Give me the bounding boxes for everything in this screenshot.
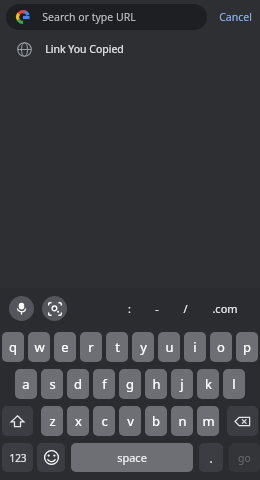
staticText: c [101, 412, 108, 430]
button[interactable]: y [132, 332, 154, 362]
staticText: d [74, 375, 82, 393]
staticText: r [88, 338, 94, 356]
staticText: Cancel [219, 10, 252, 24]
staticText: / [183, 301, 188, 316]
button[interactable]: Emoji [37, 443, 65, 472]
staticText: u [165, 338, 174, 356]
staticText: Search or type URL [42, 10, 136, 24]
staticText: o [217, 338, 225, 356]
button[interactable]: f [93, 369, 115, 399]
staticText: .com [212, 301, 238, 316]
button[interactable]: t [106, 332, 128, 362]
staticText: b [152, 412, 160, 430]
staticText: j [180, 375, 184, 393]
button[interactable]: b [145, 406, 167, 436]
button[interactable]: Shift [2, 406, 33, 436]
button[interactable]: r [80, 332, 102, 362]
button[interactable]: space [71, 443, 193, 472]
staticText: Link You Copied [45, 42, 124, 56]
button[interactable]: o [210, 332, 232, 362]
button[interactable]: a [15, 369, 37, 399]
staticText: e [61, 338, 69, 356]
button[interactable]: : [122, 295, 137, 322]
button[interactable]: Cancel [211, 4, 260, 30]
staticText: n [178, 412, 187, 430]
button[interactable]: h [145, 369, 167, 399]
staticText: y [140, 338, 147, 356]
staticText: x [75, 412, 82, 430]
button[interactable]: u [158, 332, 180, 362]
staticText: l [232, 375, 236, 393]
button[interactable]: c [93, 406, 115, 436]
button[interactable]: d [67, 369, 89, 399]
button[interactable]: 123 [2, 443, 33, 472]
staticText: space [117, 450, 147, 465]
staticText: go [238, 451, 251, 465]
button[interactable]: z [41, 406, 63, 436]
button[interactable]: g [119, 369, 141, 399]
button[interactable]: v [119, 406, 141, 436]
button[interactable]: / [177, 295, 194, 322]
staticText: - [155, 301, 159, 316]
staticText: s [49, 375, 56, 393]
staticText: p [243, 338, 251, 356]
staticText: q [9, 338, 17, 356]
staticText: k [205, 375, 212, 393]
button[interactable]: l [223, 369, 245, 399]
button[interactable]: n [171, 406, 193, 436]
button[interactable]: i [184, 332, 206, 362]
staticText: w [34, 338, 45, 356]
button[interactable]: go [229, 443, 260, 472]
staticText: i [193, 338, 197, 356]
button[interactable]: s [41, 369, 63, 399]
staticText: a [22, 375, 30, 393]
staticText: t [115, 338, 120, 356]
staticText: z [49, 412, 56, 430]
button[interactable]: .com [206, 295, 244, 322]
button[interactable]: k [197, 369, 219, 399]
button[interactable]: e [54, 332, 76, 362]
button[interactable]: Google Lens [42, 296, 67, 321]
button[interactable]: p [236, 332, 258, 362]
staticText: f [102, 375, 107, 393]
staticText: . [209, 450, 213, 466]
button[interactable]: . [199, 443, 223, 472]
button[interactable]: - [149, 295, 165, 322]
button[interactable]: w [28, 332, 50, 362]
staticText: m [202, 412, 215, 430]
button[interactable]: Search or type URL [6, 4, 207, 30]
button[interactable]: Voice search [9, 296, 34, 321]
button[interactable]: Link You Copied [0, 34, 260, 64]
button[interactable]: m [197, 406, 219, 436]
staticText: 123 [9, 451, 27, 465]
staticText: v [127, 412, 134, 430]
button[interactable]: Backspace [227, 406, 258, 436]
button[interactable]: j [171, 369, 193, 399]
button[interactable]: q [2, 332, 24, 362]
staticText: g [126, 375, 134, 393]
staticText: : [128, 301, 131, 316]
staticText: h [152, 375, 161, 393]
button[interactable]: x [67, 406, 89, 436]
